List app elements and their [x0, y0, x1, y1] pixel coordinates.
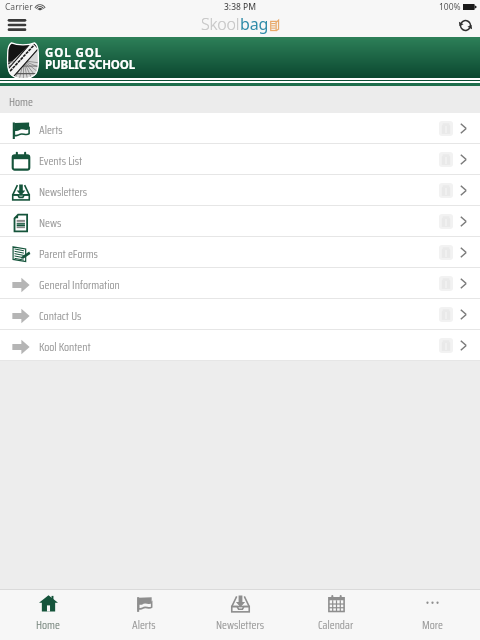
staticText: PUBLIC SCHOOL [45, 57, 135, 73]
staticText: Newsletters [216, 616, 265, 634]
staticText: 3:38 PM [224, 1, 257, 13]
button[interactable]: Alerts [96, 590, 192, 640]
button[interactable]: General Information [0, 268, 480, 299]
staticText: Skool [201, 13, 240, 35]
staticText: Home [36, 616, 60, 634]
staticText: bag [240, 13, 269, 35]
staticText: Carrier [5, 1, 33, 13]
button[interactable]: News [0, 206, 480, 237]
staticText: More [422, 616, 443, 634]
staticText: 100% [439, 1, 461, 13]
button[interactable]: Refresh [450, 12, 480, 38]
button[interactable]: Newsletters [0, 175, 480, 206]
button[interactable]: Kool Kontent [0, 330, 480, 361]
staticText: Home [9, 93, 33, 111]
button[interactable]: Alerts [0, 113, 480, 144]
staticText: Contact Us [39, 307, 82, 325]
staticText: Parent eForms [39, 245, 98, 263]
staticText: Calendar [318, 616, 354, 634]
staticText: Newsletters [39, 183, 88, 201]
button[interactable]: Home [0, 590, 96, 640]
staticText: Events List [39, 152, 83, 170]
button[interactable]: Contact Us [0, 299, 480, 330]
button[interactable]: Calendar [288, 590, 384, 640]
staticText: General Information [39, 276, 120, 294]
button[interactable]: Parent eForms [0, 237, 480, 268]
staticText: News [39, 214, 62, 232]
button[interactable]: Newsletters [192, 590, 288, 640]
button[interactable]: Events List [0, 144, 480, 175]
button[interactable]: Menu [0, 12, 34, 38]
staticText: Alerts [39, 121, 63, 139]
staticText: GOL GOL [45, 45, 102, 61]
button[interactable]: More [384, 590, 480, 640]
staticText: Kool Kontent [39, 338, 91, 356]
staticText: Alerts [132, 616, 156, 634]
